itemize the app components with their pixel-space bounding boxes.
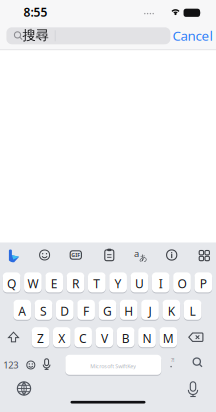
staticText: T bbox=[93, 276, 100, 291]
staticText: C bbox=[79, 330, 87, 346]
button[interactable]: 123 bbox=[2, 358, 20, 372]
button[interactable]: X bbox=[53, 327, 71, 348]
staticText: Cancel bbox=[172, 27, 212, 44]
button[interactable]: Q bbox=[3, 272, 20, 293]
button[interactable]: V bbox=[96, 327, 113, 348]
button[interactable]: I bbox=[152, 272, 169, 293]
button[interactable]: Dictation bbox=[186, 381, 199, 397]
staticText: R bbox=[72, 276, 79, 291]
button[interactable]: T bbox=[88, 272, 106, 293]
button[interactable]: Z bbox=[32, 327, 49, 348]
staticText: D bbox=[60, 303, 69, 319]
button[interactable]: Shift bbox=[5, 330, 21, 344]
button[interactable]: G bbox=[99, 299, 116, 320]
staticText: X bbox=[58, 330, 65, 346]
button[interactable]: H bbox=[120, 299, 137, 320]
staticText: Z bbox=[37, 330, 44, 346]
staticText: Microsoft SwiftKey bbox=[90, 363, 136, 370]
staticText: H bbox=[124, 303, 133, 319]
button[interactable]: Delete bbox=[187, 331, 205, 343]
button[interactable]: U bbox=[131, 272, 148, 293]
button[interactable]: R bbox=[67, 272, 84, 293]
button[interactable]: K bbox=[162, 299, 180, 320]
staticText: Y bbox=[115, 276, 122, 291]
staticText: B bbox=[122, 330, 130, 346]
staticText: A bbox=[18, 303, 26, 319]
button[interactable]: S bbox=[35, 299, 52, 320]
staticText: U bbox=[135, 276, 144, 291]
staticText: O bbox=[177, 276, 186, 291]
button[interactable]: GIFs bbox=[69, 250, 82, 260]
button[interactable]: Bing search bbox=[7, 249, 21, 263]
staticText: J bbox=[148, 303, 151, 319]
button[interactable]: Search bbox=[192, 357, 205, 370]
button[interactable]: Translator bbox=[133, 250, 147, 262]
button[interactable]: B bbox=[117, 327, 135, 348]
staticText: G bbox=[103, 303, 112, 319]
staticText: 8:55 bbox=[23, 4, 47, 20]
button[interactable]: Emoji bbox=[39, 249, 51, 261]
button[interactable]: A bbox=[13, 299, 31, 320]
staticText: 搜尋 bbox=[23, 27, 49, 43]
button[interactable]: M bbox=[159, 327, 177, 348]
button[interactable]: About bbox=[166, 249, 178, 261]
button[interactable]: E bbox=[45, 272, 63, 293]
button[interactable]: Y bbox=[109, 272, 127, 293]
button[interactable]: O bbox=[173, 272, 191, 293]
staticText: V bbox=[101, 330, 108, 346]
button[interactable]: More features bbox=[198, 250, 210, 262]
button[interactable]: 搜尋 bbox=[6, 27, 170, 44]
staticText: 123 bbox=[3, 359, 18, 371]
staticText: E bbox=[51, 276, 58, 291]
staticText: L bbox=[190, 303, 196, 319]
button[interactable]: D bbox=[56, 299, 74, 320]
staticText: あ bbox=[139, 253, 147, 263]
staticText: Q bbox=[7, 276, 16, 291]
button[interactable]: Cancel bbox=[170, 27, 214, 44]
button[interactable]: L bbox=[184, 299, 201, 320]
staticText: N bbox=[142, 330, 151, 346]
button[interactable]: Emoji bbox=[26, 360, 36, 370]
button[interactable]: P bbox=[194, 272, 212, 293]
staticText: ?! bbox=[171, 356, 174, 364]
button[interactable]: Voice input bbox=[42, 358, 51, 370]
button[interactable]: C bbox=[74, 327, 92, 348]
staticText: P bbox=[200, 276, 207, 291]
staticText: M bbox=[163, 330, 174, 346]
staticText: W bbox=[27, 276, 38, 291]
button[interactable]: Clipboard bbox=[104, 249, 115, 261]
staticText: K bbox=[168, 303, 175, 319]
button[interactable]: Next keyboard bbox=[16, 381, 31, 396]
button[interactable]: N bbox=[138, 327, 156, 348]
button[interactable]: F bbox=[77, 299, 95, 320]
button[interactable]: W bbox=[24, 272, 42, 293]
staticText: S bbox=[40, 303, 47, 319]
button[interactable]: J bbox=[141, 299, 159, 320]
staticText: a bbox=[134, 247, 139, 260]
staticText: GIF bbox=[71, 251, 80, 259]
button[interactable]: Period bbox=[167, 357, 177, 370]
staticText: F bbox=[83, 303, 89, 319]
staticText: I bbox=[159, 276, 163, 291]
button[interactable]: Space bbox=[65, 354, 161, 375]
